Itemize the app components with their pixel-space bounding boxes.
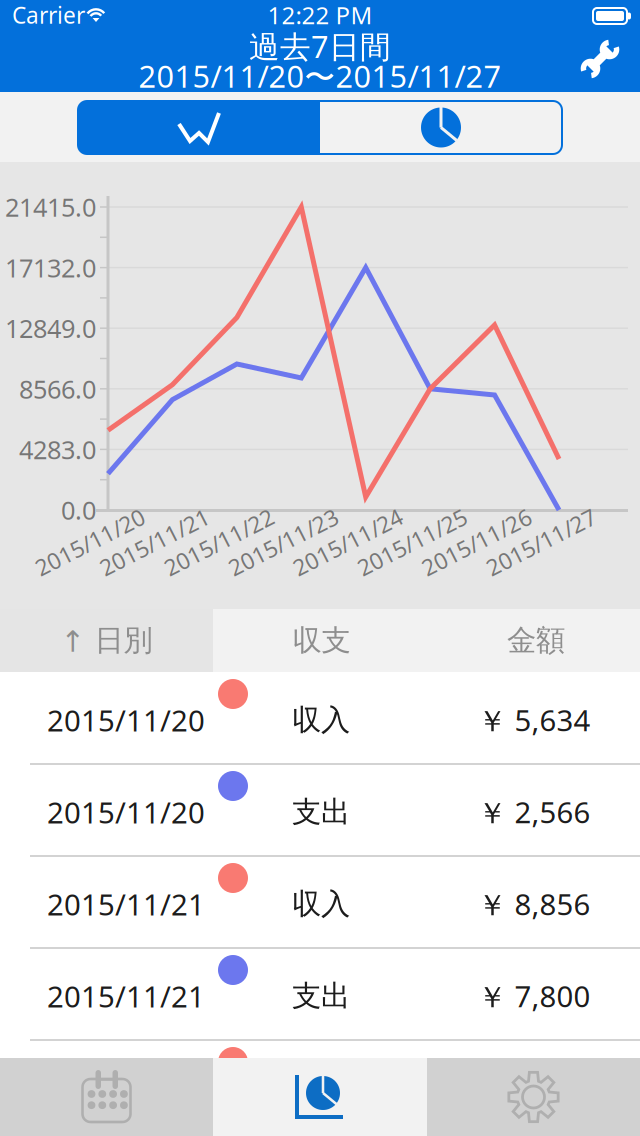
staticText: 2015/11/23	[223, 527, 343, 557]
staticText: 4283.0	[19, 433, 96, 466]
staticText: Carrier	[12, 0, 85, 30]
staticText: 収入	[292, 702, 350, 738]
button[interactable]: Line chart	[78, 101, 320, 154]
staticText: 支出	[292, 978, 350, 1014]
staticText: 金額	[507, 622, 565, 658]
staticText: 12849.0	[5, 311, 96, 345]
button[interactable]: Settings	[427, 1058, 640, 1136]
staticText: 2015/11/25	[352, 527, 472, 557]
staticText: ￥ 7,800	[477, 976, 590, 1015]
button[interactable]: 収支	[213, 609, 428, 672]
button[interactable]: 2015/11/21	[0, 856, 640, 948]
staticText: 2015/11/20〜2015/11/27	[138, 56, 501, 96]
staticText: 2015/11/20	[30, 527, 150, 557]
button[interactable]: Calendar	[0, 1058, 213, 1136]
staticText: 2015/11/20	[47, 700, 205, 739]
staticText: 支出	[292, 794, 350, 830]
staticText: 21415.0	[5, 190, 96, 224]
staticText: 2015/11/22	[159, 527, 279, 557]
staticText: ￥ 8,856	[477, 884, 590, 923]
staticText: 過去7日間	[249, 26, 391, 66]
button[interactable]: 2015/11/21	[0, 948, 640, 1040]
staticText: 2015/11/26	[417, 527, 537, 557]
staticText: 2015/11/24	[288, 527, 408, 557]
staticText: 収入	[292, 886, 350, 922]
staticText: 17132.0	[5, 251, 96, 284]
staticText: 12:22 PM	[267, 0, 372, 31]
button[interactable]: Settings	[569, 28, 631, 90]
button[interactable]: Charts	[213, 1058, 427, 1136]
staticText: 2015/11/27	[481, 527, 601, 557]
staticText: ￥ 2,566	[477, 792, 590, 831]
staticText: 8566.0	[19, 372, 96, 406]
button[interactable]: 2015/11/20	[0, 672, 640, 764]
button[interactable]: 2015/11/20	[0, 764, 640, 856]
staticText: 2015/11/20	[47, 792, 205, 831]
staticText: 2015/11/21	[47, 884, 205, 923]
button[interactable]: 金額	[428, 609, 640, 672]
button[interactable]: ↑ 日別	[0, 609, 213, 672]
button[interactable]: Pie chart	[320, 101, 562, 154]
staticText: 2015/11/21	[94, 527, 214, 557]
staticText: 収支	[292, 622, 350, 658]
staticText: 0.0	[61, 493, 96, 527]
staticText: 2015/11/21	[47, 976, 205, 1015]
staticText: ￥ 5,634	[477, 700, 590, 739]
staticText: ↑ 日別	[60, 622, 152, 658]
